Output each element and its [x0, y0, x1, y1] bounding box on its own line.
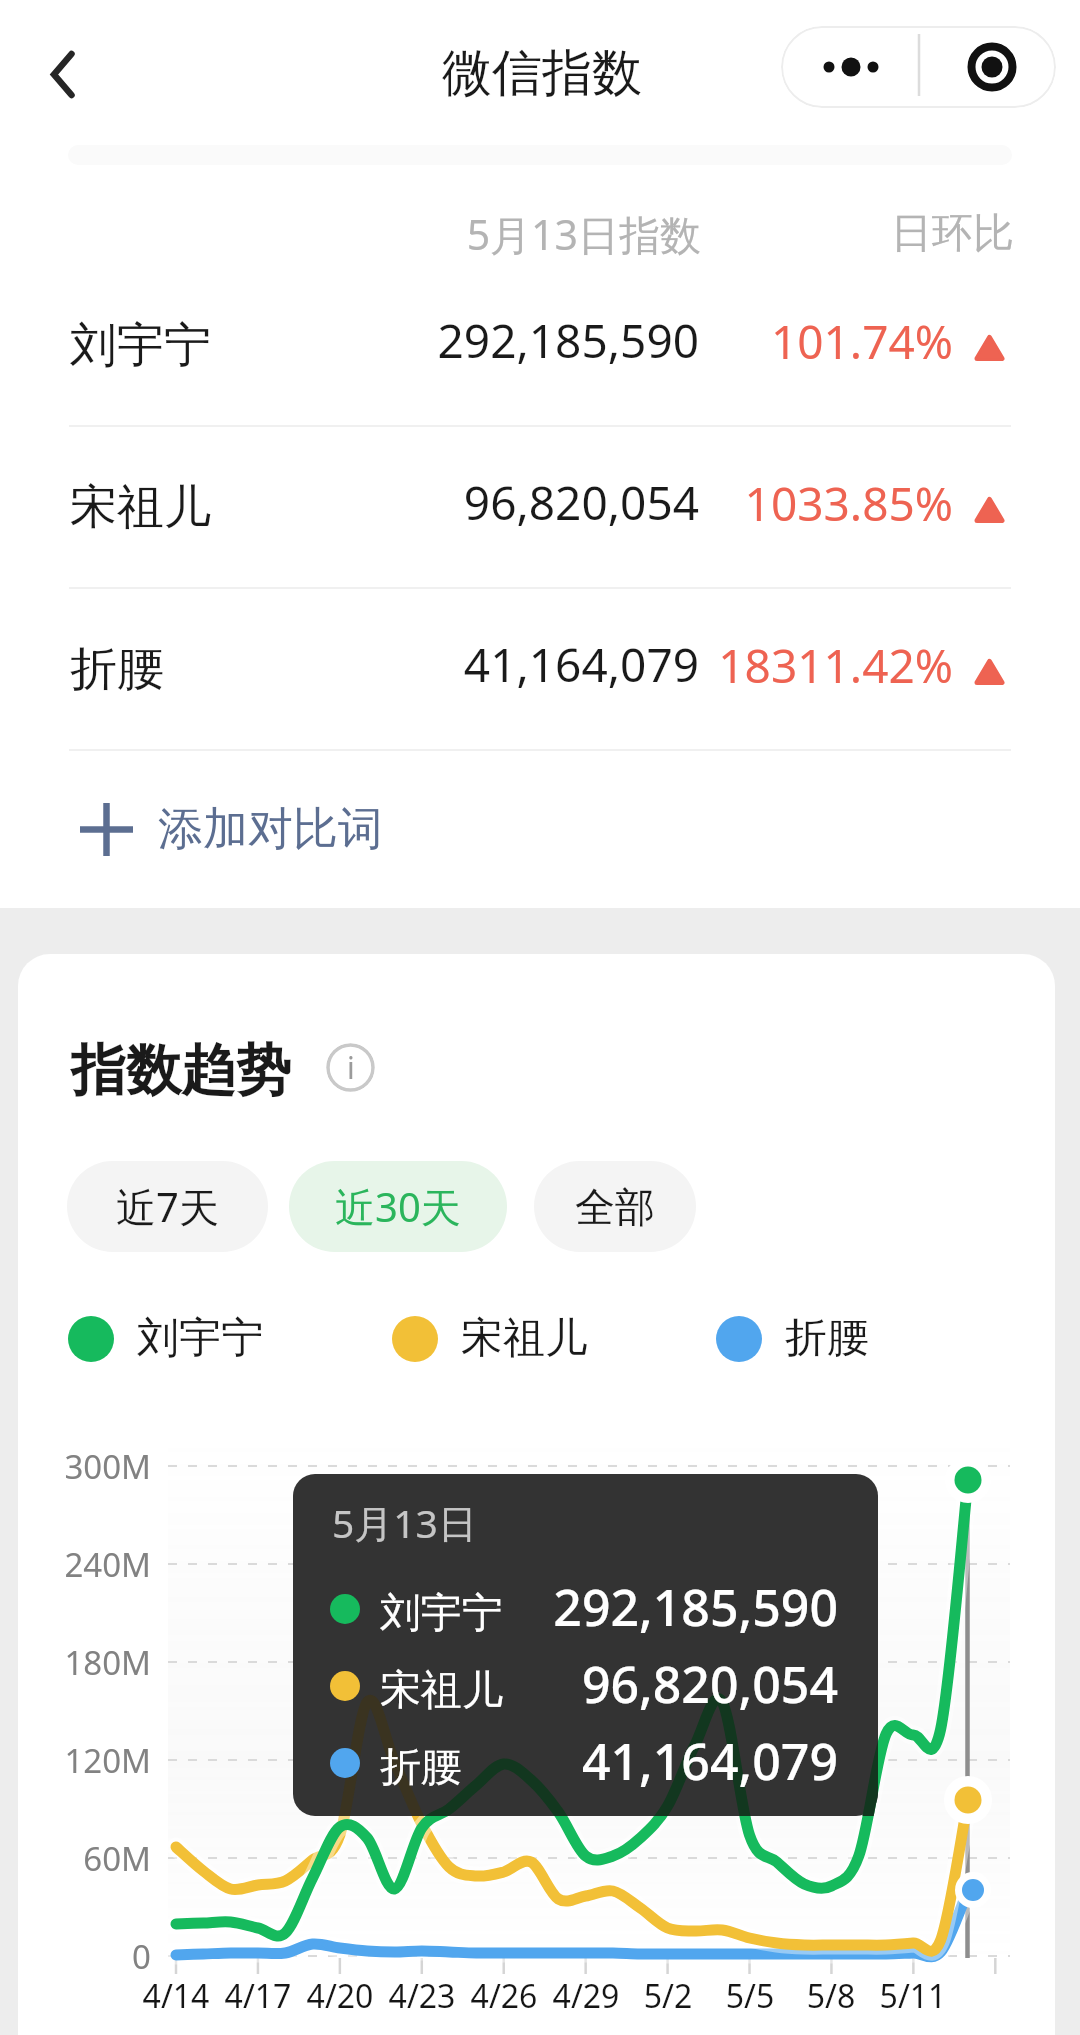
staticText: 180M	[18, 1640, 151, 1685]
staticText: 4/26	[444, 1974, 564, 2018]
staticText: 18311.42%	[0, 634, 953, 697]
button[interactable]: 返回	[26, 33, 98, 115]
staticText: 292,185,590	[480, 1573, 838, 1641]
staticText: 5/8	[771, 1974, 891, 2018]
staticText: 宋祖儿	[70, 478, 211, 537]
staticText: 宋祖儿	[380, 1665, 503, 1717]
staticText: 96,820,054	[480, 1650, 838, 1718]
button[interactable]: 全部	[534, 1161, 696, 1252]
staticText: 添加对比词	[158, 801, 383, 858]
button[interactable]: 指数趋势说明	[326, 1043, 375, 1092]
staticText: 4/20	[280, 1974, 400, 2018]
staticText: 近7天	[116, 1179, 219, 1234]
staticText: 折腰	[70, 640, 164, 699]
staticText: 刘宇宁	[380, 1588, 503, 1640]
staticText: 4/17	[198, 1974, 318, 2018]
staticText: 刘宇宁	[137, 1312, 263, 1365]
staticText: 4/14	[116, 1974, 236, 2018]
staticText: 日环比	[0, 208, 1014, 260]
button[interactable]: 折腰	[0, 589, 1080, 749]
staticText: 刘宇宁	[70, 316, 211, 375]
staticText: 4/23	[362, 1974, 482, 2018]
staticText: 0	[18, 1934, 151, 1979]
staticText: 5月13日指数	[0, 206, 701, 262]
staticText: 指数趋势	[71, 1036, 291, 1105]
staticText: 101.74%	[0, 310, 953, 373]
staticText: 96,820,054	[0, 471, 699, 534]
staticText: i	[347, 1047, 355, 1088]
staticText: 宋祖儿	[461, 1312, 587, 1365]
staticText: 292,185,590	[0, 309, 699, 372]
button[interactable]: 近7天	[67, 1161, 268, 1252]
staticText: 1033.85%	[0, 472, 953, 535]
staticText: 微信指数	[442, 42, 642, 105]
staticText: 折腰	[380, 1742, 462, 1794]
staticText: 5月13日	[332, 1496, 477, 1549]
staticText: 5/11	[853, 1974, 973, 2018]
staticText: 4/29	[526, 1974, 646, 2018]
staticText: 300M	[18, 1444, 151, 1489]
staticText: 近30天	[335, 1179, 461, 1234]
button[interactable]: 宋祖儿	[0, 427, 1080, 587]
staticText: 60M	[18, 1836, 151, 1881]
staticText: 120M	[18, 1738, 151, 1783]
staticText: 5/2	[608, 1974, 728, 2018]
staticText: 全部	[575, 1182, 655, 1232]
staticText: 240M	[18, 1542, 151, 1587]
staticText: 5/5	[690, 1974, 810, 2018]
staticText: 41,164,079	[480, 1727, 838, 1795]
staticText: 折腰	[785, 1312, 869, 1365]
button[interactable]: 近30天	[289, 1161, 507, 1252]
button[interactable]: 添加对比词	[0, 751, 1080, 908]
staticText: 41,164,079	[0, 633, 699, 696]
button[interactable]: 刘宇宁	[0, 265, 1080, 425]
button[interactable]: 更多	[781, 26, 1056, 108]
